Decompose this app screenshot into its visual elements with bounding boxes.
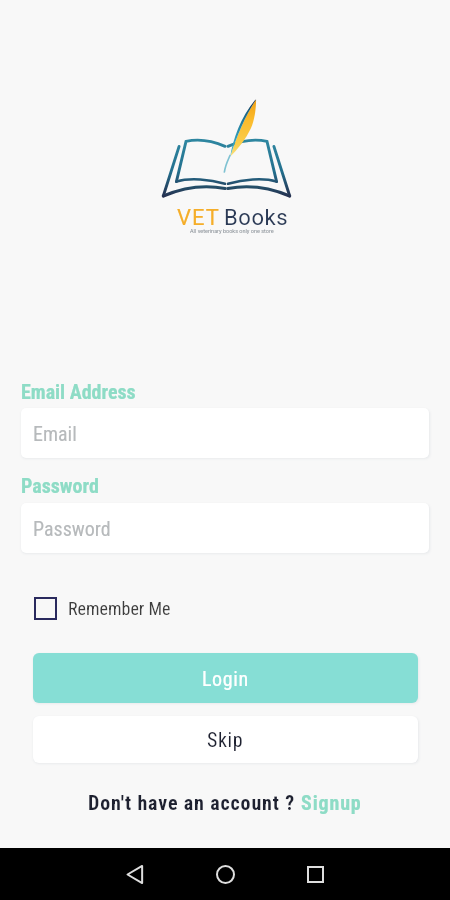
button[interactable]: Skip (33, 716, 418, 763)
button[interactable]: Email (21, 408, 429, 458)
staticText: Password (21, 474, 99, 497)
staticText: Email (33, 422, 77, 445)
button[interactable]: Home (191, 848, 259, 900)
staticText: Signup (301, 791, 362, 814)
button[interactable]: Login (33, 653, 418, 703)
staticText: VET (177, 205, 220, 231)
button[interactable]: Signup (301, 791, 362, 814)
button[interactable]: Remember Me (32, 595, 173, 622)
staticText: Login (202, 667, 249, 690)
staticText: Password (33, 517, 111, 540)
staticText: Books (224, 205, 289, 231)
staticText: Email Address (21, 380, 136, 403)
button[interactable]: Password (21, 503, 429, 553)
staticText: Remember Me (68, 598, 171, 619)
staticText: All veterinary books only one store (190, 228, 274, 234)
staticText: Don't have an account ? (88, 791, 301, 814)
button[interactable]: Back (101, 848, 169, 900)
staticText: Skip (207, 728, 244, 751)
button[interactable]: Recent apps (281, 848, 349, 900)
